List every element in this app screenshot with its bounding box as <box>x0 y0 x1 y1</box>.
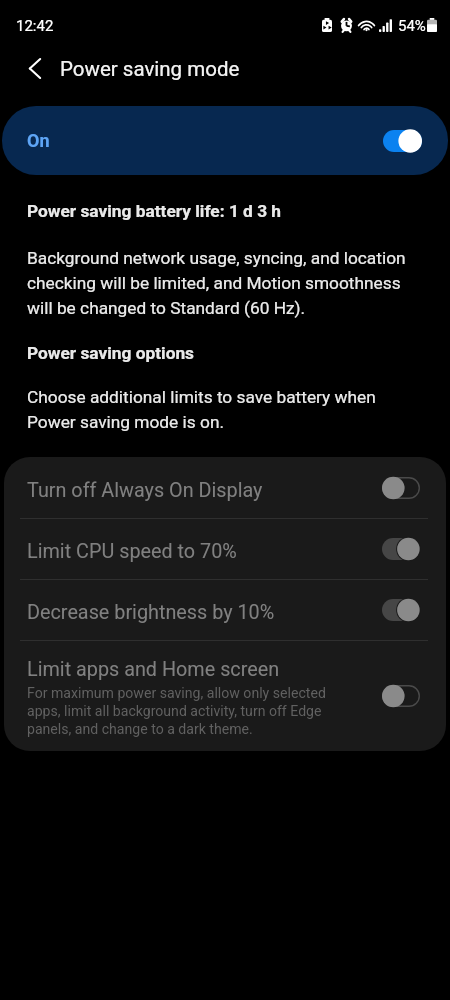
staticText: Power saving battery life: 1 d 3 h <box>27 198 282 222</box>
staticText: Limit CPU speed to 70% <box>27 539 237 563</box>
staticText: Power saving options <box>27 340 194 364</box>
button[interactable]: Limit apps and Home screen <box>4 641 446 750</box>
staticText: On <box>27 130 50 151</box>
button[interactable]: Navigate up <box>9 47 60 91</box>
staticText: For maximum power saving, allow only sel… <box>27 684 330 738</box>
staticText: Power saving mode <box>60 57 240 81</box>
staticText: Choose additional limits to save battery… <box>27 384 423 434</box>
staticText: Decrease brightness by 10% <box>27 600 275 624</box>
staticText: Turn off Always On Display <box>27 478 263 502</box>
button[interactable]: Limit CPU speed to 70% <box>4 519 446 579</box>
button[interactable]: On <box>2 106 448 175</box>
button[interactable]: Decrease brightness by 10% <box>4 580 446 640</box>
staticText: Background network usage, syncing, and l… <box>27 245 423 320</box>
button[interactable]: Turn off Always On Display <box>4 457 446 518</box>
staticText: Limit apps and Home screen <box>27 657 280 681</box>
staticText: 12:42 <box>16 17 54 35</box>
staticText: 54% <box>398 17 426 35</box>
